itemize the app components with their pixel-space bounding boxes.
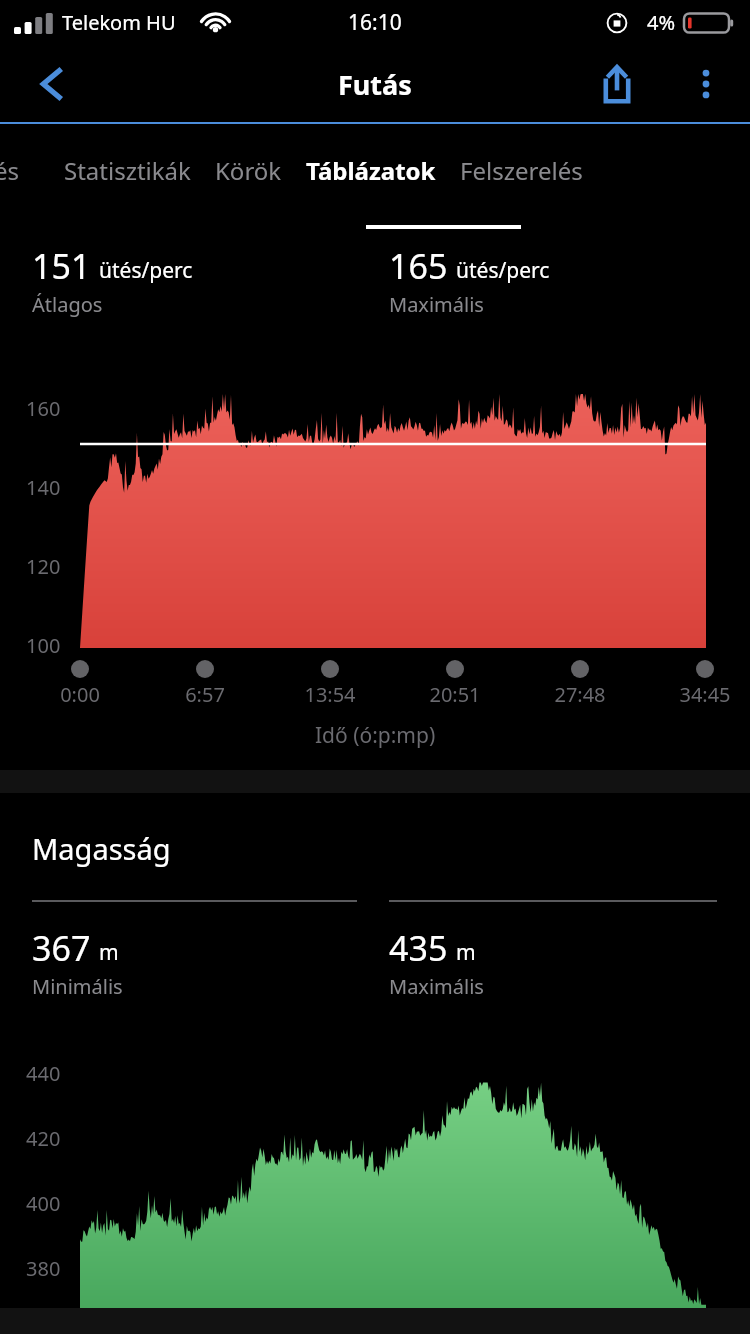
staticText: 16:10 [348,8,402,37]
staticText: Körök [215,154,282,187]
staticText: m [456,938,476,967]
staticText: Magasság [32,829,171,868]
staticText: 420 [26,1125,61,1152]
button[interactable]: Felszerelés [460,154,583,187]
staticText: 367 [32,925,91,971]
staticText: 100 [26,632,61,659]
staticText: 27:48 [530,681,630,708]
button[interactable]: Körök [215,154,282,187]
staticText: 440 [26,1060,61,1087]
staticText: 13:54 [280,681,380,708]
button[interactable]: Statisztikák [64,154,191,187]
staticText: 380 [26,1255,61,1282]
button[interactable]: Back [16,48,88,120]
button[interactable]: More options [674,52,738,116]
staticText: 0:00 [30,681,130,708]
button[interactable]: Share [582,49,652,119]
staticText: ütés/perc [456,256,550,285]
staticText: Maximális [389,291,484,318]
staticText: 165 [389,243,448,289]
staticText: 6:57 [155,681,255,708]
staticText: m [99,938,119,967]
staticText: Felszerelés [460,154,583,187]
staticText: 160 [26,395,61,422]
staticText: Telekom HU [62,9,176,36]
staticText: 4% [647,9,676,36]
button[interactable]: és [0,154,44,187]
staticText: Minimális [32,973,123,1000]
staticText: Maximális [389,973,484,1000]
staticText: 140 [26,474,61,501]
staticText: 34:45 [655,681,750,708]
staticText: Átlagos [32,291,103,318]
staticText: 20:51 [405,681,505,708]
staticText: ütés/perc [99,256,193,285]
staticText: Futás [338,66,412,103]
staticText: 400 [26,1190,61,1217]
staticText: és [0,154,20,187]
staticText: 435 [389,925,448,971]
staticText: 120 [26,553,61,580]
staticText: Statisztikák [64,154,191,187]
staticText: Idő (ó:p:mp) [315,721,436,750]
staticText: 151 [32,243,91,289]
button[interactable]: Táblázatok [306,154,436,187]
staticText: Táblázatok [306,154,436,187]
